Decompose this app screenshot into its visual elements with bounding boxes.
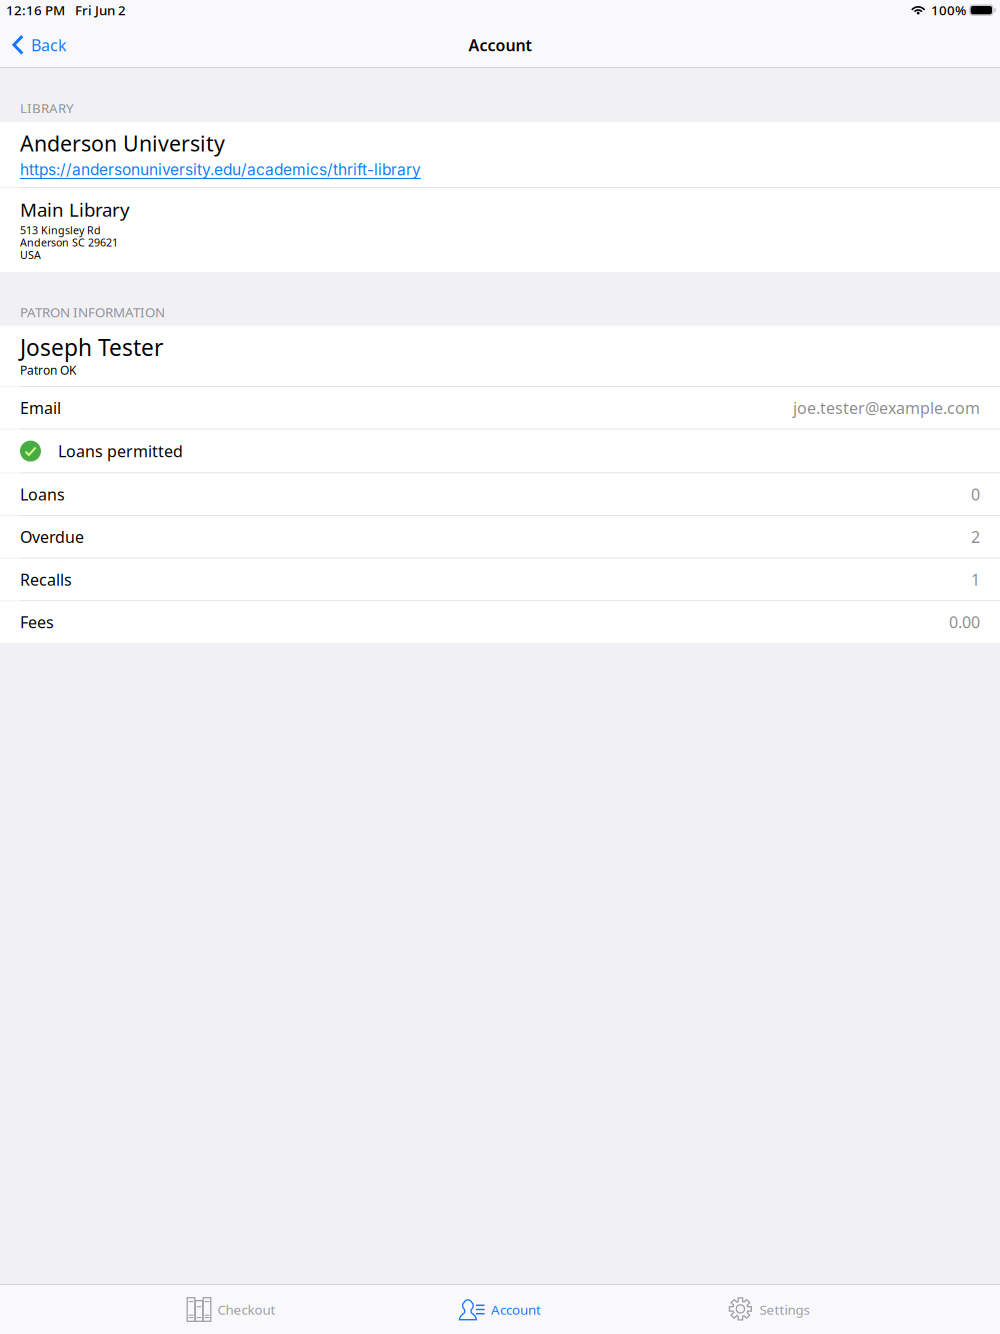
staticText: 100% bbox=[931, 1, 966, 19]
staticText: LIBRARY bbox=[20, 99, 74, 117]
staticText: Patron OK bbox=[20, 362, 76, 378]
staticText: Main Library bbox=[20, 197, 130, 222]
staticText: 1 bbox=[971, 569, 980, 590]
button[interactable]: Loans bbox=[0, 473, 1000, 515]
button[interactable]: Fees bbox=[0, 601, 1000, 643]
staticText: 2 bbox=[971, 526, 980, 547]
button[interactable]: Account bbox=[410, 1285, 590, 1334]
staticText: Account bbox=[491, 1301, 541, 1318]
button[interactable]: Email bbox=[0, 387, 1000, 429]
staticText: Back bbox=[31, 34, 67, 56]
button[interactable]: Back bbox=[0, 23, 79, 67]
staticText: Fri Jun 2 bbox=[75, 1, 126, 19]
button[interactable]: Loans permitted bbox=[0, 430, 1000, 472]
staticText: Overdue bbox=[20, 526, 84, 547]
button[interactable]: Settings bbox=[679, 1285, 859, 1334]
staticText: Checkout bbox=[217, 1301, 275, 1318]
button[interactable]: Overdue bbox=[0, 516, 1000, 558]
staticText: https://andersonuniversity.edu/academics… bbox=[20, 160, 421, 179]
staticText: Anderson University bbox=[20, 129, 225, 157]
button[interactable]: Checkout bbox=[141, 1285, 321, 1334]
staticText: Settings bbox=[759, 1301, 809, 1318]
staticText: Loans bbox=[20, 484, 65, 505]
staticText: Recalls bbox=[20, 569, 72, 590]
staticText: USA bbox=[20, 248, 41, 262]
staticText: Fees bbox=[20, 611, 54, 633]
staticText: Email bbox=[20, 397, 61, 418]
staticText: Account bbox=[468, 34, 531, 56]
staticText: PATRON INFORMATION bbox=[20, 303, 165, 321]
staticText: Anderson SC 29621 bbox=[20, 235, 118, 249]
button[interactable]: Anderson University bbox=[0, 122, 1000, 187]
staticText: joe.tester@example.com bbox=[793, 397, 980, 418]
staticText: 12:16 PM bbox=[6, 1, 65, 19]
staticText: 513 Kingsley Rd bbox=[20, 223, 101, 237]
staticText: 0.00 bbox=[949, 611, 980, 633]
staticText: Loans permitted bbox=[58, 440, 183, 462]
staticText: Joseph Tester bbox=[20, 332, 163, 362]
button[interactable]: Recalls bbox=[0, 559, 1000, 600]
staticText: 0 bbox=[971, 484, 980, 505]
